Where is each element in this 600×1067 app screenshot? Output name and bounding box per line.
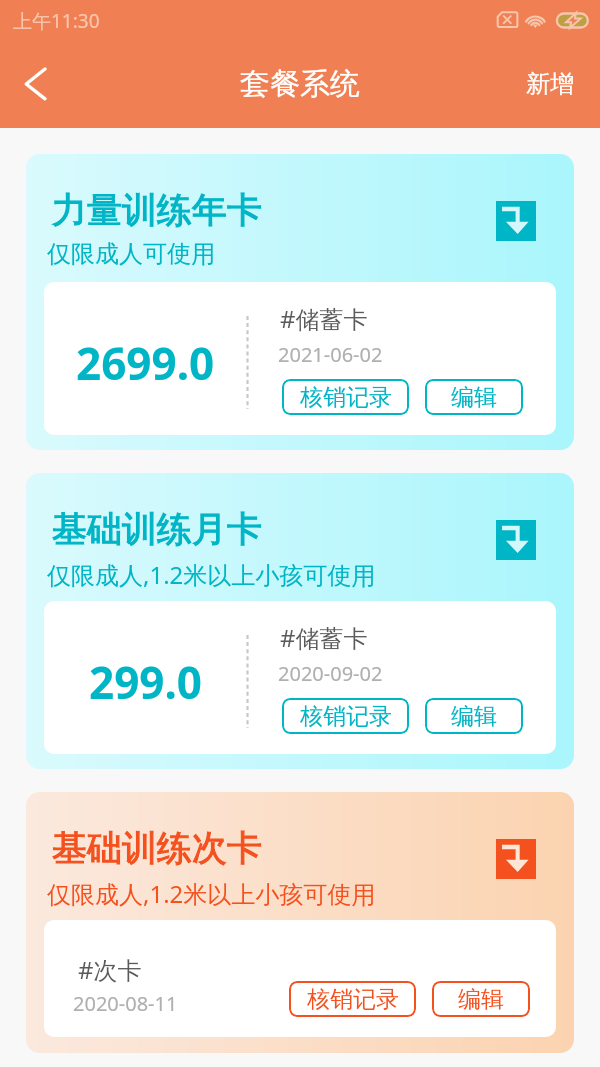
staticText: 基础训练月卡 [52, 507, 262, 551]
staticText: 基础训练次卡 [52, 826, 262, 870]
staticText: 编辑 [458, 985, 504, 1014]
staticText: 2020-09-02 [278, 660, 383, 687]
staticText: 2020-08-11 [73, 990, 178, 1017]
staticText: 新增 [526, 69, 574, 99]
staticText: 基础训练月卡 [52, 507, 262, 551]
staticText: 编辑 [451, 702, 497, 731]
staticText: 仅限成人,1.2米以上小孩可使用 [47, 877, 376, 910]
staticText: 上午11:30 [13, 8, 100, 34]
staticText: 仅限成人可使用 [47, 239, 215, 269]
staticText: #次卡 [78, 953, 142, 986]
staticText: 仅限成人,1.2米以上小孩可使用 [47, 558, 376, 591]
staticText: 核销记录 [307, 985, 399, 1014]
button[interactable]: 编辑 [425, 698, 523, 734]
button[interactable]: Move down [496, 520, 536, 560]
staticText: 力量训练年卡 [52, 188, 262, 232]
button[interactable]: 基础训练次卡 [26, 792, 574, 1053]
button[interactable]: 力量训练年卡 [26, 154, 574, 450]
button[interactable]: Move down [496, 839, 536, 879]
button[interactable]: 核销记录 [282, 379, 409, 415]
button[interactable]: Move down [496, 201, 536, 241]
button[interactable]: 基础训练月卡 [26, 473, 574, 769]
staticText: #储蓄卡 [280, 621, 368, 654]
button[interactable]: Back [0, 40, 66, 128]
staticText: 2699.0 [76, 333, 215, 393]
staticText: 299.0 [89, 652, 203, 712]
staticText: #储蓄卡 [280, 302, 368, 335]
staticText: 核销记录 [300, 383, 392, 412]
staticText: 基础训练次卡 [52, 826, 262, 870]
staticText: 力量训练年卡 [52, 188, 262, 232]
button[interactable]: 核销记录 [282, 698, 409, 734]
staticText: 套餐系统 [240, 65, 360, 103]
button[interactable]: 核销记录 [289, 981, 416, 1017]
staticText: 编辑 [451, 383, 497, 412]
button[interactable]: 新增 [509, 53, 600, 115]
staticText: 核销记录 [300, 702, 392, 731]
button[interactable]: 编辑 [425, 379, 523, 415]
staticText: 2021-06-02 [278, 341, 383, 368]
button[interactable]: 编辑 [432, 981, 530, 1017]
